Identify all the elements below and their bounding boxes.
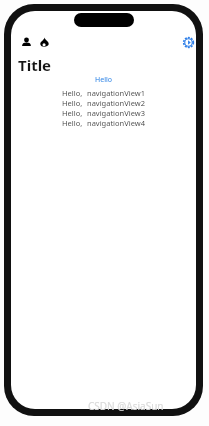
- button[interactable]: Hello,: [62, 108, 145, 118]
- button[interactable]: Hello,: [62, 88, 145, 98]
- button[interactable]: Flame: [36, 34, 52, 50]
- staticText: Hello,: [62, 118, 83, 128]
- staticText: Hello,: [62, 88, 83, 98]
- staticText: Hello,: [62, 108, 83, 118]
- staticText: Hello,: [62, 98, 83, 108]
- button[interactable]: Hello: [95, 75, 112, 85]
- staticText: navigationView3: [87, 108, 145, 118]
- staticText: navigationView1: [87, 88, 145, 98]
- button[interactable]: Hello,: [62, 98, 145, 108]
- staticText: navigationView2: [87, 98, 145, 108]
- staticText: CSDN @AsiaSun: [88, 399, 164, 413]
- button[interactable]: Hello,: [62, 118, 145, 128]
- staticText: Title: [18, 55, 52, 75]
- button[interactable]: Account: [18, 34, 34, 50]
- staticText: navigationView4: [87, 118, 145, 128]
- button[interactable]: Settings: [179, 33, 196, 51]
